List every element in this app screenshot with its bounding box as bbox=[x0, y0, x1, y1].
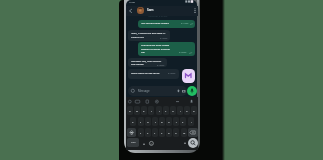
staticText: p bbox=[193, 109, 195, 112]
button[interactable]: d bbox=[145, 117, 151, 126]
button[interactable] bbox=[188, 128, 198, 137]
staticText: e bbox=[143, 109, 145, 112]
staticText: call bbox=[141, 50, 145, 53]
staticText: l bbox=[191, 120, 192, 123]
staticText: Message bbox=[138, 89, 150, 93]
staticText: 5:11 pm bbox=[181, 22, 189, 25]
staticText: g bbox=[161, 120, 163, 123]
staticText: Yesterday, 5:09 pm bbox=[148, 15, 168, 18]
button[interactable]: You around later today? bbox=[138, 20, 195, 28]
button[interactable]: Thinking we grab coffee bbox=[138, 42, 195, 56]
staticText: r bbox=[151, 109, 152, 112]
button[interactable]: v bbox=[159, 128, 165, 137]
staticText: t bbox=[159, 109, 160, 112]
staticText: Thinking we grab coffee bbox=[141, 43, 170, 46]
button[interactable]: k bbox=[180, 117, 186, 126]
button[interactable]: t bbox=[156, 106, 162, 115]
staticText: m bbox=[183, 131, 186, 134]
staticText: ?123 bbox=[131, 141, 136, 144]
button[interactable]: u bbox=[170, 106, 176, 115]
staticText: 12:30 bbox=[129, 1, 135, 4]
staticText: i bbox=[180, 109, 181, 112]
staticText: k bbox=[182, 120, 184, 123]
button[interactable] bbox=[182, 138, 188, 147]
button[interactable]: l bbox=[188, 117, 194, 126]
button[interactable] bbox=[188, 138, 198, 148]
button[interactable]: f bbox=[152, 117, 158, 126]
button[interactable]: x bbox=[145, 128, 151, 137]
button[interactable]: y bbox=[163, 106, 169, 115]
button[interactable]: p bbox=[191, 106, 197, 115]
button[interactable] bbox=[126, 6, 198, 16]
staticText: c bbox=[154, 131, 156, 134]
staticText: f bbox=[155, 120, 156, 123]
button[interactable]: m bbox=[181, 128, 187, 137]
staticText: 5:18 pm bbox=[157, 64, 165, 67]
staticText: Yeah, I should be free after 6. bbox=[131, 31, 166, 34]
staticText: o bbox=[186, 109, 188, 112]
button[interactable]: j bbox=[173, 117, 179, 126]
staticText: Same place as last time? bbox=[131, 71, 160, 74]
button[interactable]: r bbox=[148, 106, 154, 115]
button[interactable]: n bbox=[173, 128, 179, 137]
button[interactable]: w bbox=[134, 106, 140, 115]
button[interactable]: Honestly yes, that sounds bbox=[128, 58, 167, 67]
button[interactable] bbox=[182, 69, 195, 83]
staticText: b bbox=[168, 131, 170, 134]
staticText: way better. bbox=[131, 62, 144, 65]
staticText: d bbox=[147, 120, 149, 123]
staticText: 5:19 pm bbox=[168, 72, 176, 75]
staticText: h bbox=[168, 120, 170, 123]
staticText: 5:15 pm bbox=[160, 37, 168, 40]
button[interactable]: e bbox=[141, 106, 147, 115]
button[interactable] bbox=[194, 8, 196, 14]
button[interactable]: s bbox=[138, 117, 144, 126]
button[interactable]: q bbox=[127, 106, 133, 115]
staticText: v bbox=[161, 131, 163, 134]
staticText: What's up? bbox=[131, 35, 144, 38]
button[interactable] bbox=[127, 128, 136, 137]
button[interactable]: z bbox=[138, 128, 144, 137]
staticText: w bbox=[136, 109, 138, 112]
staticText: n bbox=[175, 131, 177, 134]
button[interactable] bbox=[137, 7, 144, 14]
button[interactable]: Message bbox=[128, 86, 187, 96]
button[interactable]: a bbox=[130, 117, 136, 126]
button[interactable]: h bbox=[166, 117, 172, 126]
staticText: a bbox=[132, 120, 134, 123]
button[interactable]: Same place as last time? bbox=[128, 69, 179, 79]
staticText: instead of doing another bbox=[141, 47, 171, 50]
staticText: y bbox=[165, 109, 167, 112]
staticText: You around later today? bbox=[141, 21, 169, 24]
staticText: j bbox=[176, 120, 177, 123]
staticText: 5:16 pm bbox=[179, 51, 187, 54]
staticText: Sam bbox=[147, 8, 154, 12]
staticText: Honestly yes, that sounds bbox=[131, 59, 162, 62]
button[interactable]: ?123 bbox=[127, 138, 139, 147]
button[interactable]: b bbox=[166, 128, 172, 137]
staticText: q bbox=[129, 109, 131, 112]
button[interactable]: o bbox=[184, 106, 190, 115]
button[interactable]: c bbox=[152, 128, 158, 137]
button[interactable]: Yeah, I should be free after 6. bbox=[128, 30, 170, 41]
button[interactable]: i bbox=[177, 106, 183, 115]
button[interactable] bbox=[141, 138, 147, 147]
staticText: z bbox=[140, 131, 142, 134]
staticText: s bbox=[140, 120, 142, 123]
button[interactable]: g bbox=[159, 117, 165, 126]
staticText: u bbox=[172, 109, 174, 112]
button[interactable] bbox=[187, 86, 197, 96]
staticText: x bbox=[147, 131, 149, 134]
button[interactable] bbox=[149, 141, 154, 146]
